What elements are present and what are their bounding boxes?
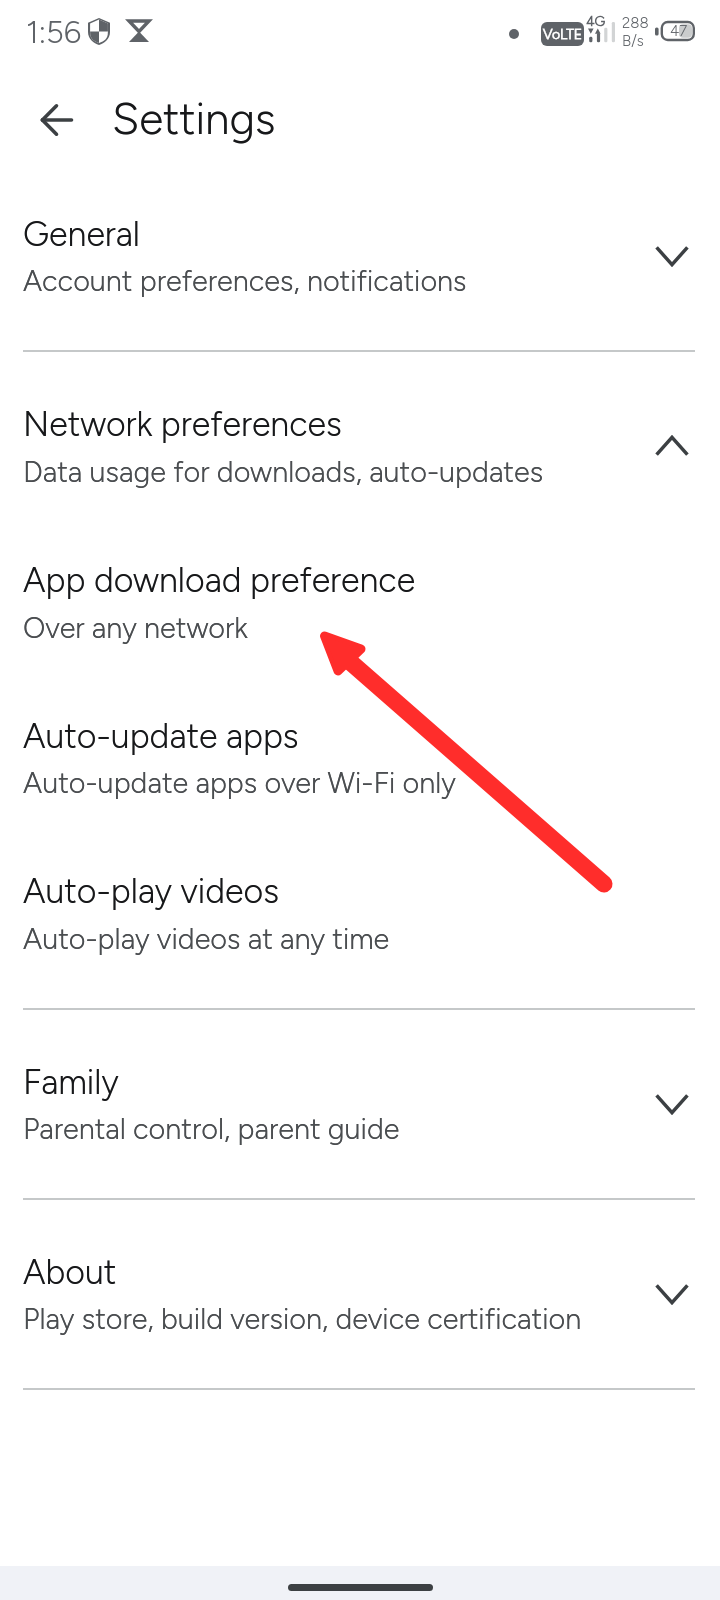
staticText: Parental control, parent guide <box>23 1112 400 1147</box>
staticText: About <box>23 1252 117 1293</box>
staticText: Auto-update apps over Wi-Fi only <box>23 766 457 801</box>
staticText: Parental control, parent guide <box>23 1112 400 1147</box>
staticText: 288 <box>622 14 649 32</box>
staticText: Network preferences <box>23 404 342 445</box>
staticText: Play store, build version, device certif… <box>23 1302 582 1337</box>
staticText: General <box>23 214 140 255</box>
staticText: General <box>23 214 140 255</box>
button[interactable]: Auto-play videos <box>0 865 720 960</box>
button[interactable]: Auto-update apps <box>0 710 720 804</box>
staticText: Family <box>23 1062 119 1103</box>
staticText: Play store, build version, device certif… <box>23 1302 582 1337</box>
staticText: App download preference <box>23 560 416 601</box>
staticText: Auto-update apps <box>23 716 299 757</box>
staticText: Settings <box>112 92 276 145</box>
staticText: Auto-update apps <box>23 716 299 757</box>
staticText: Data usage for downloads, auto-updates <box>23 455 544 490</box>
button[interactable]: About <box>0 1246 720 1340</box>
button[interactable]: Network preferences <box>0 398 720 493</box>
staticText: Network preferences <box>23 404 342 445</box>
staticText: Auto-play videos <box>23 871 279 912</box>
staticText: Account preferences, notifications <box>23 264 467 299</box>
button[interactable]: Back <box>28 92 84 148</box>
staticText: Account preferences, notifications <box>23 264 467 299</box>
staticText: Over any network <box>23 611 248 646</box>
staticText: Auto-update apps over Wi-Fi only <box>23 766 457 801</box>
staticText: Settings <box>112 92 276 145</box>
staticText: Auto-play videos at any time <box>23 922 390 957</box>
staticText: Over any network <box>23 611 248 646</box>
staticText: 1:56 <box>26 14 82 51</box>
button[interactable]: App download preference <box>0 554 720 649</box>
staticText: Family <box>23 1062 119 1103</box>
button[interactable]: General <box>0 208 720 302</box>
staticText: About <box>23 1252 117 1293</box>
staticText: 4G <box>586 13 606 30</box>
staticText: 47 <box>670 22 688 40</box>
staticText: App download preference <box>23 560 416 601</box>
button[interactable]: Family <box>0 1056 720 1150</box>
staticText: Auto-play videos at any time <box>23 922 390 957</box>
staticText: Auto-play videos <box>23 871 279 912</box>
staticText: B/s <box>622 32 644 50</box>
staticText: Data usage for downloads, auto-updates <box>23 455 544 490</box>
staticText: VoLTE <box>543 26 583 43</box>
